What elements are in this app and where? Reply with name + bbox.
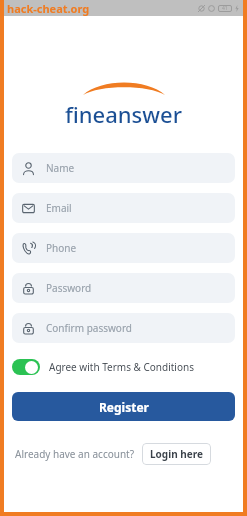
staticText: Name <box>46 161 75 175</box>
staticText: Email <box>46 201 72 215</box>
staticText: Agree with Terms & Conditions <box>49 360 194 374</box>
button[interactable]: Agree with Terms & Conditions <box>12 359 235 375</box>
staticText: Register <box>99 399 149 415</box>
staticText: Already have an account? <box>15 447 135 461</box>
button[interactable]: Confirm password <box>12 313 235 343</box>
staticText: hack-cheat.org <box>7 1 90 16</box>
staticText: 41 <box>222 5 228 12</box>
button[interactable]: Phone <box>12 233 235 263</box>
button[interactable]: Password <box>12 273 235 303</box>
staticText: fineanswer <box>65 99 182 129</box>
staticText: Phone <box>46 241 77 255</box>
button[interactable]: Register <box>12 392 235 421</box>
button[interactable]: Name <box>12 153 235 183</box>
staticText: Confirm password <box>46 321 132 335</box>
staticText: Password <box>46 281 92 295</box>
button[interactable]: Email <box>12 193 235 223</box>
button[interactable]: Login here <box>142 443 211 465</box>
staticText: Login here <box>150 447 203 461</box>
